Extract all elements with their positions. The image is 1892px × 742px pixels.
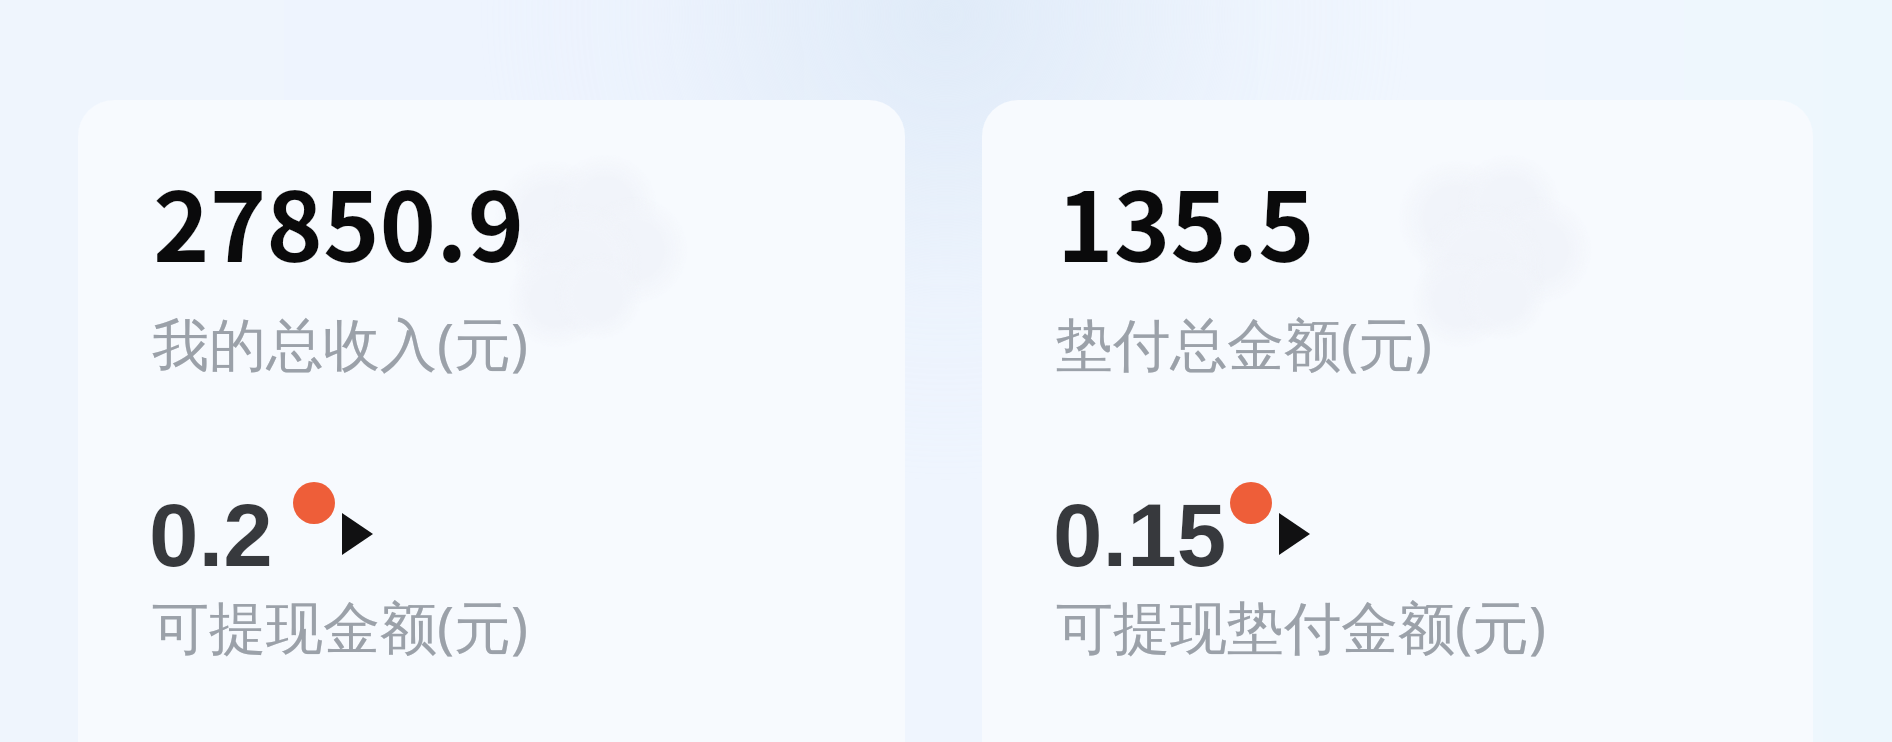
staticText: 可提现垫付金额(元)	[1056, 587, 1547, 665]
staticText: 可提现金额(元)	[152, 587, 529, 665]
button[interactable]: 135.5	[982, 100, 1813, 742]
staticText: 0.15	[1053, 485, 1227, 584]
staticText: 我的总收入(元)	[152, 304, 529, 382]
other: More	[1279, 513, 1310, 555]
other: More	[342, 513, 373, 555]
staticText: 27850.9	[153, 151, 525, 290]
staticText: 135.5	[1057, 151, 1315, 290]
staticText: 0.2	[149, 485, 273, 584]
staticText: 垫付总金额(元)	[1056, 304, 1433, 382]
button[interactable]: 27850.9	[78, 100, 905, 742]
